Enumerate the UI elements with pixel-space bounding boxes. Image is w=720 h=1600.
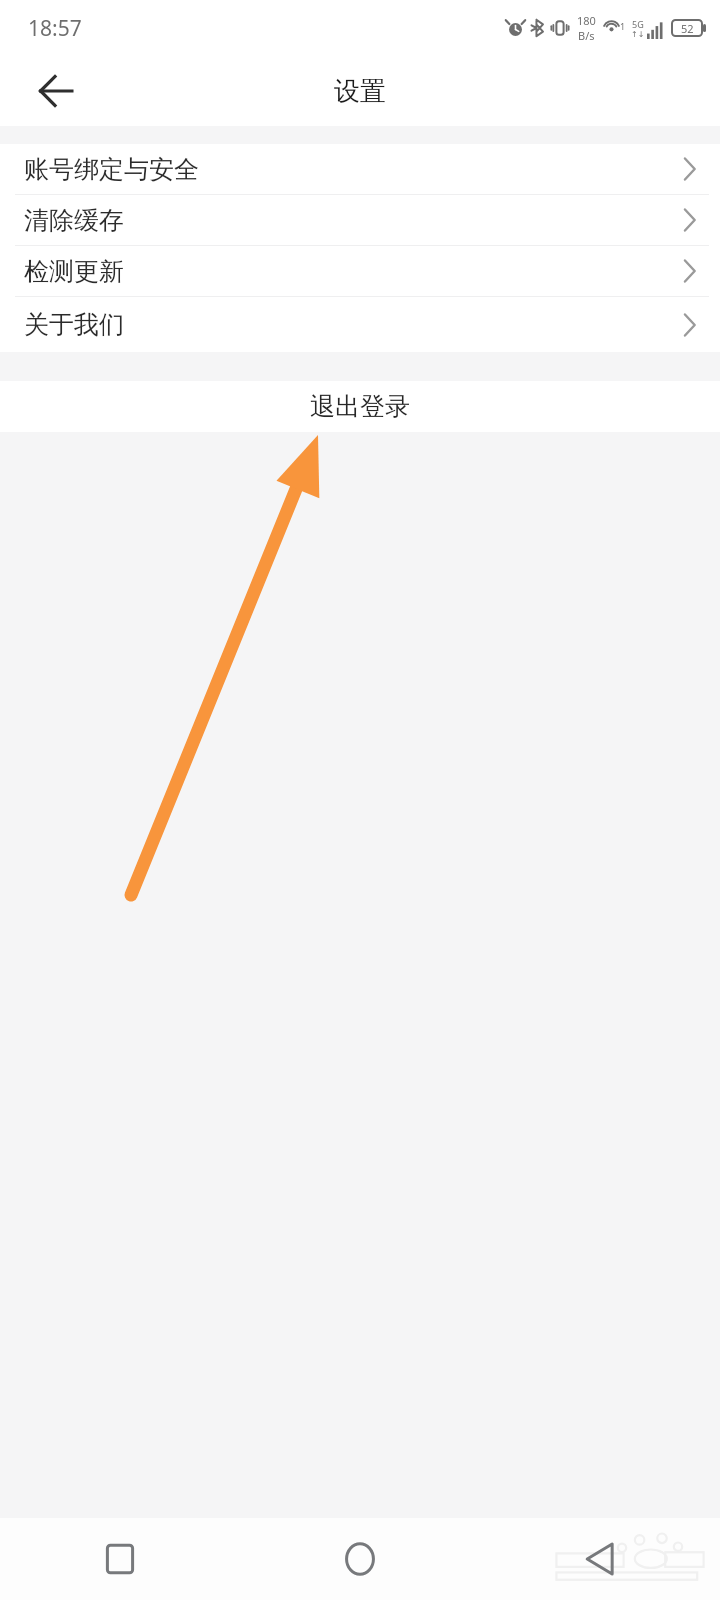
- staticText: 关于我们: [24, 309, 124, 340]
- button[interactable]: 退出登录: [0, 381, 720, 432]
- staticText: 180: [577, 13, 596, 28]
- button[interactable]: Back: [480, 1518, 720, 1600]
- staticText: 退出登录: [310, 391, 410, 422]
- staticText: 1: [620, 20, 626, 32]
- staticText: 账号绑定与安全: [24, 154, 199, 185]
- staticText: 52: [681, 21, 694, 36]
- button[interactable]: 清除缓存: [0, 195, 720, 245]
- staticText: 检测更新: [24, 256, 124, 287]
- button[interactable]: 账号绑定与安全: [0, 144, 720, 194]
- staticText: 18:57: [28, 14, 82, 43]
- button[interactable]: Home: [240, 1518, 480, 1600]
- button[interactable]: Recent apps: [0, 1518, 240, 1600]
- staticText: 清除缓存: [24, 205, 124, 236]
- staticText: 5G: [632, 18, 644, 30]
- staticText: B/s: [578, 28, 595, 43]
- staticText: 设置: [334, 75, 386, 108]
- staticText: ↑↓: [631, 30, 645, 39]
- button[interactable]: 检测更新: [0, 246, 720, 296]
- button[interactable]: 关于我们: [0, 297, 720, 352]
- button[interactable]: Back: [23, 59, 87, 123]
